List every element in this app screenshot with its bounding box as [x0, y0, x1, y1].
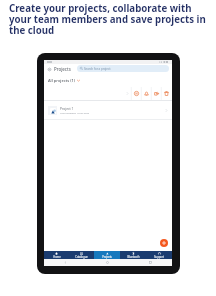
button[interactable]: Menu — [46, 66, 52, 72]
staticText: Last Modified: 15.05.2023 — [60, 111, 90, 114]
button[interactable]: Project 1 — [44, 101, 172, 119]
button[interactable]: Copy — [151, 87, 161, 100]
staticText: Bluetooth — [127, 255, 140, 259]
button[interactable]: Delete — [161, 87, 171, 100]
staticText: Projects — [102, 255, 112, 259]
staticText: All projects (1) — [48, 78, 75, 83]
staticText: Project 1 — [60, 106, 74, 110]
button[interactable]: Bluetooth — [120, 251, 146, 259]
staticText: Create your projects, collaborate with y… — [9, 2, 213, 37]
button[interactable]: Home — [44, 251, 69, 259]
button[interactable]: Catalogue — [69, 251, 94, 259]
button[interactable]: Projects — [94, 251, 120, 259]
button[interactable]: Support — [146, 251, 172, 259]
button[interactable]: Add project — [160, 239, 168, 247]
button[interactable]: Search for a project — [77, 65, 169, 72]
button[interactable]: Home — [86, 259, 129, 266]
staticText: Search for a project — [84, 67, 111, 71]
staticText: Home — [53, 255, 61, 259]
button[interactable]: Alert — [141, 87, 151, 100]
button[interactable]: Recents — [129, 259, 172, 266]
staticText: Projects — [54, 66, 71, 72]
staticText: Catalogue — [75, 255, 88, 259]
button[interactable]: Timer — [131, 87, 141, 100]
staticText: Support — [154, 255, 164, 259]
